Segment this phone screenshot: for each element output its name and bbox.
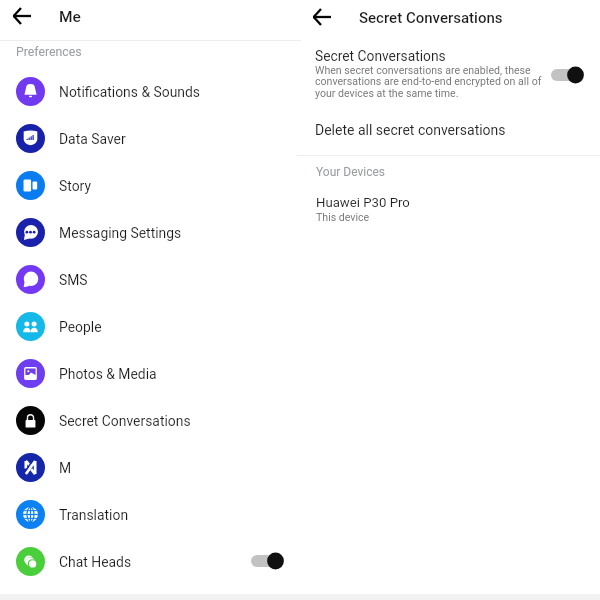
staticText: Secret Conversations [359,9,503,27]
staticText: Translation [59,507,129,523]
staticText: People [59,319,102,335]
staticText: Secret Conversations [315,48,446,64]
staticText: M [59,460,72,476]
staticText: Huawei P30 Pro [316,195,410,210]
staticText: Story [59,178,91,194]
button[interactable]: Chat Heads [0,538,297,584]
button[interactable]: Back [6,0,38,32]
staticText: Delete all secret conversations [315,122,506,138]
staticText: Notifications & Sounds [59,84,200,100]
button[interactable]: Data Saver [0,115,297,161]
staticText: When secret conversations are enabled, t… [315,64,542,100]
button[interactable]: Photos & Media [0,350,297,396]
button[interactable]: SMS [0,256,297,302]
button[interactable]: Notifications & Sounds [0,68,297,114]
button[interactable]: Messaging Settings [0,209,297,255]
staticText: SMS [59,272,88,288]
button[interactable]: Secret Conversations toggle, on [551,66,585,84]
button[interactable]: Translation [0,491,297,537]
button[interactable]: Back [306,1,338,33]
button[interactable]: Story [0,162,297,208]
button[interactable]: People [0,303,297,349]
staticText: This device [316,211,370,223]
staticText: Your Devices [316,165,386,179]
staticText: Preferences [16,45,82,59]
staticText: Me [59,8,81,26]
button[interactable]: Delete all secret conversations [315,122,600,148]
button[interactable]: M [0,444,297,490]
staticText: Secret Conversations [59,413,191,429]
staticText: Chat Heads [59,554,132,570]
button[interactable]: Chat Heads toggle, on [251,552,285,570]
staticText: Photos & Media [59,366,157,382]
button[interactable]: Secret Conversations [0,397,297,443]
staticText: Data Saver [59,131,126,147]
staticText: Messaging Settings [59,225,182,241]
button[interactable]: Huawei P30 Pro [300,189,600,231]
